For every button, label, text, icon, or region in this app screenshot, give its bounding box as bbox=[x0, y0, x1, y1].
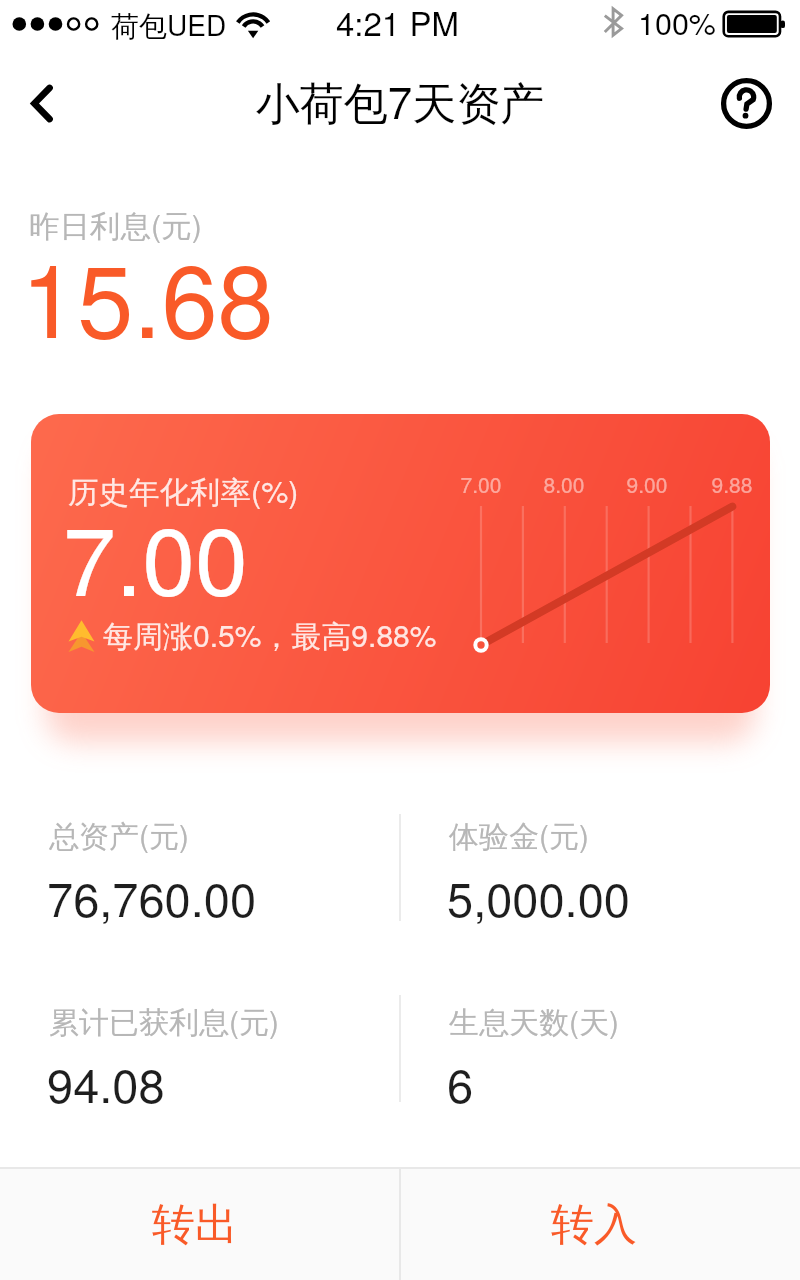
staticText: 15.68 bbox=[21, 222, 274, 367]
staticText: 转出 bbox=[152, 1198, 238, 1252]
staticText: 转入 bbox=[551, 1198, 637, 1252]
staticText: 体验金(元) bbox=[449, 813, 589, 856]
staticText: 昨日利息(元) bbox=[29, 202, 202, 246]
staticText: 76,760.00 bbox=[47, 863, 257, 930]
staticText: 小荷包7天资产 bbox=[0, 68, 800, 132]
button[interactable]: 历史年化利率(%) bbox=[31, 414, 770, 713]
staticText: 每周涨0.5%，最高9.88% bbox=[103, 613, 437, 656]
staticText: 6 bbox=[447, 1049, 474, 1116]
button[interactable]: Back bbox=[0, 60, 92, 150]
staticText: 4:21 PM bbox=[336, 0, 459, 45]
staticText: 94.08 bbox=[47, 1049, 165, 1116]
staticText: 100% bbox=[638, 0, 716, 44]
staticText: 9.88 bbox=[692, 469, 770, 499]
staticText: 7.00 bbox=[63, 487, 248, 623]
staticText: 5,000.00 bbox=[447, 863, 630, 930]
staticText: 8.00 bbox=[524, 469, 604, 499]
staticText: 9.00 bbox=[607, 469, 687, 499]
button[interactable]: 转入 bbox=[401, 1169, 800, 1280]
staticText: 总资产(元) bbox=[49, 813, 189, 856]
staticText: 荷包UED bbox=[111, 4, 227, 44]
button[interactable]: 转出 bbox=[0, 1169, 399, 1280]
button[interactable]: Help bbox=[708, 60, 800, 150]
staticText: 历史年化利率(%) bbox=[68, 468, 299, 512]
staticText: 累计已获利息(元) bbox=[49, 999, 279, 1042]
staticText: 生息天数(天) bbox=[449, 999, 619, 1042]
staticText: 7.00 bbox=[441, 469, 521, 499]
